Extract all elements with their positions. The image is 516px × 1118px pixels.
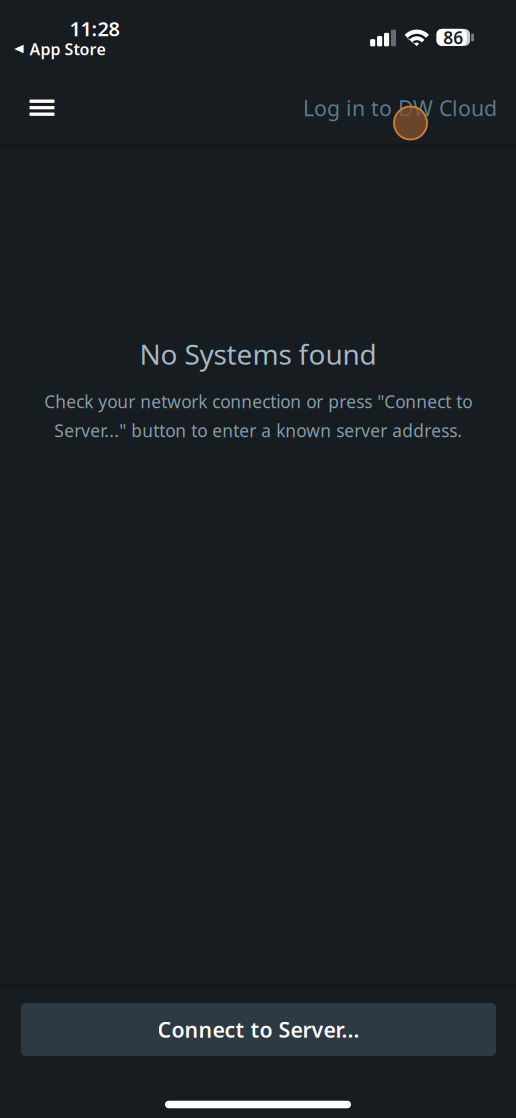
button[interactable]: Log in to DW Cloud [297, 83, 497, 133]
button[interactable]: Menu [10, 76, 74, 140]
staticText: 86 [443, 26, 463, 49]
staticText: 11:28 [69, 15, 119, 42]
staticText: Log in to DW Cloud [303, 94, 497, 122]
staticText: Check your network connection or press "… [44, 390, 472, 442]
staticText: App Store [30, 38, 106, 60]
staticText: Connect to Server... [157, 1015, 359, 1044]
staticText: No Systems found [139, 335, 376, 373]
button[interactable]: Connect to Server... [21, 1003, 496, 1056]
